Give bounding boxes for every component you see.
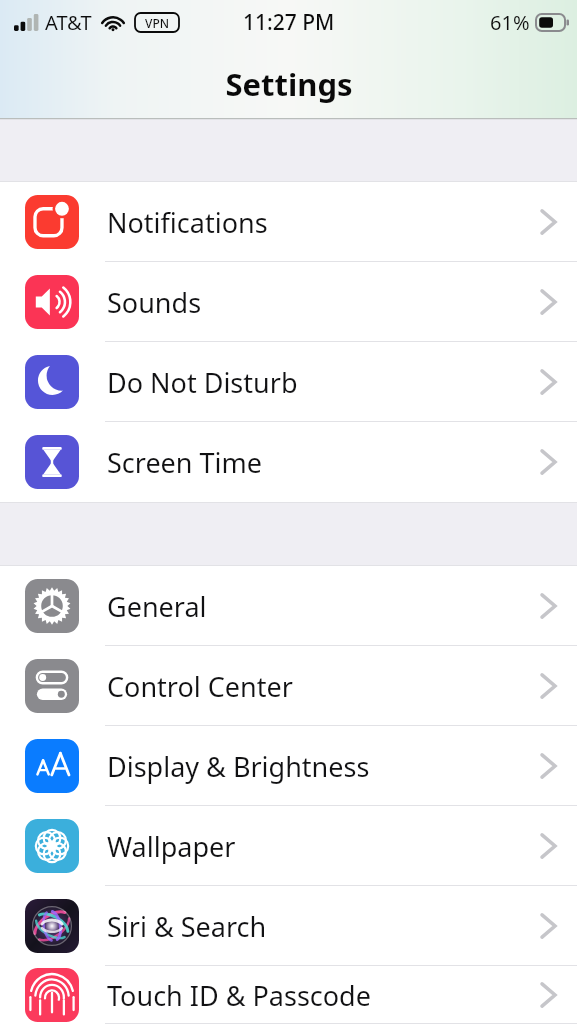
- staticText: Siri & Search: [107, 908, 267, 945]
- button[interactable]: Screen Time: [0, 422, 577, 502]
- staticText: Screen Time: [107, 444, 263, 481]
- button[interactable]: General: [0, 566, 577, 646]
- staticText: 61%: [490, 9, 530, 36]
- staticText: AT&T: [45, 9, 92, 36]
- button[interactable]: Notifications: [0, 182, 577, 262]
- staticText: Touch ID & Passcode: [107, 977, 371, 1014]
- staticText: Control Center: [107, 668, 293, 705]
- staticText: General: [107, 588, 207, 625]
- staticText: Sounds: [107, 284, 202, 321]
- staticText: Notifications: [107, 204, 268, 241]
- button[interactable]: Siri & Search: [0, 886, 577, 966]
- staticText: Do Not Disturb: [107, 364, 298, 401]
- button[interactable]: Display & Brightness: [0, 726, 577, 806]
- button[interactable]: Wallpaper: [0, 806, 577, 886]
- staticText: Display & Brightness: [107, 748, 370, 785]
- button[interactable]: Control Center: [0, 646, 577, 726]
- staticText: 11:27 PM: [243, 8, 335, 37]
- staticText: Wallpaper: [107, 828, 236, 865]
- button[interactable]: Sounds: [0, 262, 577, 342]
- staticText: Settings: [225, 63, 353, 105]
- button[interactable]: Touch ID & Passcode: [0, 966, 577, 1024]
- button[interactable]: Do Not Disturb: [0, 342, 577, 422]
- staticText: VPN: [145, 15, 170, 31]
